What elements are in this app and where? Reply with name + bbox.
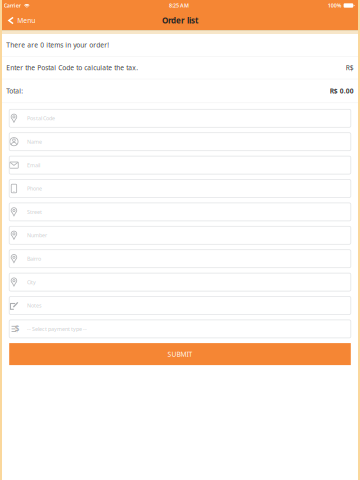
staticText: Enter the Postal Code to calculate the t… [6, 63, 138, 72]
staticText: R$ 0.00 [330, 86, 354, 95]
button[interactable]: Notes [9, 296, 351, 314]
staticText: Carrier [4, 2, 21, 9]
staticText: Email [27, 162, 40, 169]
staticText: There are 0 items in your order! [6, 41, 109, 49]
button[interactable]: SUBMIT [9, 343, 351, 365]
staticText: Total: [6, 86, 23, 95]
button[interactable]: City [9, 273, 351, 291]
staticText: Number [27, 232, 47, 239]
staticText: $ [15, 324, 20, 334]
staticText: Order list [162, 15, 198, 26]
staticText: Street [27, 208, 42, 215]
button[interactable]: Postal Code [9, 109, 351, 127]
staticText: 8:25 AM [169, 2, 189, 9]
button[interactable]: Email [9, 156, 351, 174]
staticText: Notes [27, 302, 42, 309]
button[interactable]: $ [9, 320, 351, 338]
staticText: Bairro [27, 255, 41, 262]
button[interactable]: Bairro [9, 250, 351, 268]
staticText: City [27, 279, 36, 286]
button[interactable]: Menu [2, 11, 41, 30]
button[interactable]: Phone [9, 179, 351, 197]
button[interactable]: Name [9, 133, 351, 151]
staticText: 100% [328, 2, 342, 9]
staticText: -- Select payment type -- [27, 325, 87, 332]
staticText: R$ [346, 63, 354, 72]
button[interactable]: Street [9, 203, 351, 221]
staticText: Phone [27, 185, 42, 192]
staticText: Menu [17, 16, 35, 25]
button[interactable]: Number [9, 226, 351, 244]
staticText: Postal Code [27, 115, 55, 122]
staticText: SUBMIT [167, 350, 192, 359]
staticText: Name [27, 138, 42, 145]
